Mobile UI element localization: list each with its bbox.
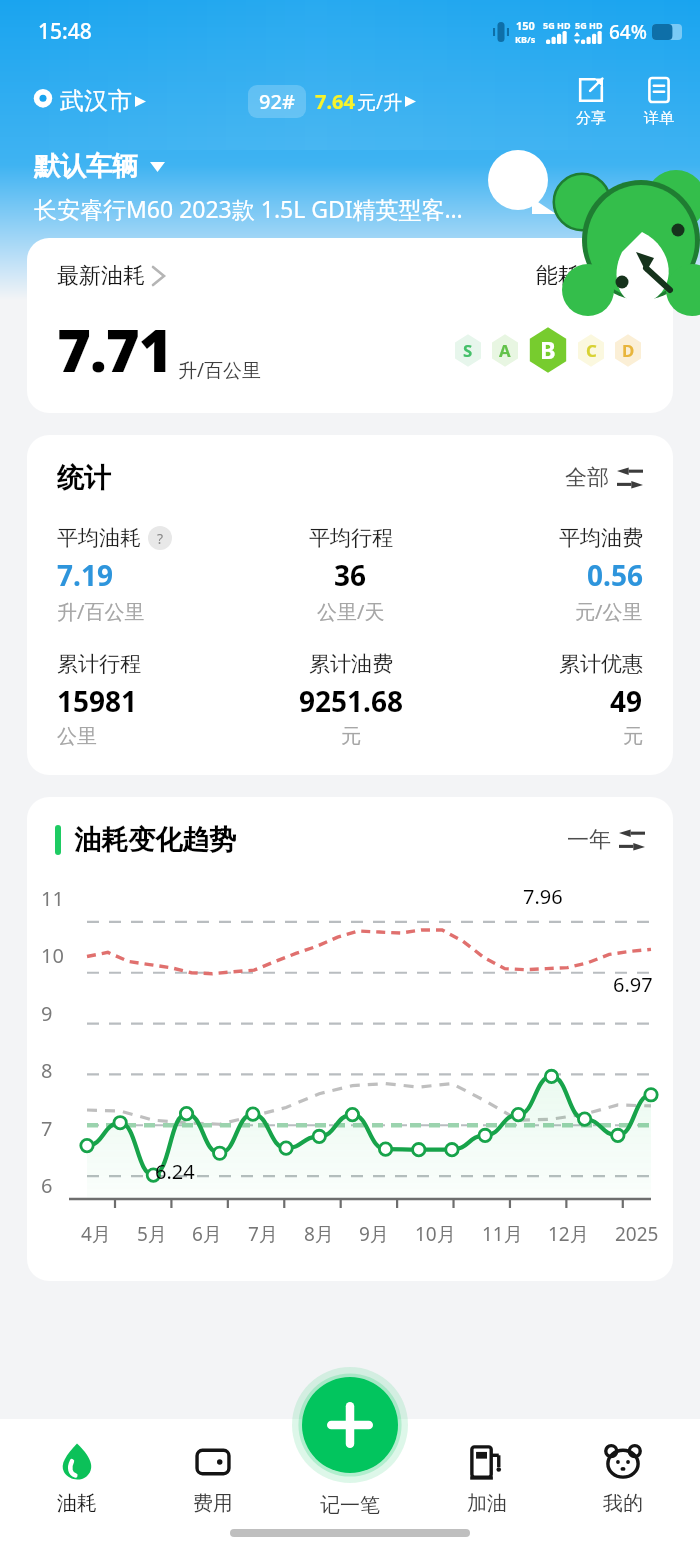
- button[interactable]: 平均油耗: [57, 525, 253, 625]
- button[interactable]: 记一笔: [302, 1377, 398, 1473]
- staticText: 记一笔: [320, 1493, 380, 1518]
- staticText: 元/公里: [575, 598, 643, 625]
- staticText: 10月: [415, 1221, 456, 1247]
- staticText: 统计: [57, 461, 111, 495]
- staticText: 15981: [57, 682, 138, 720]
- staticText: 元/升: [357, 89, 403, 115]
- staticText: 10: [41, 942, 64, 969]
- staticText: A: [499, 339, 511, 362]
- staticText: 6.97: [613, 971, 653, 998]
- staticText: 元: [623, 724, 643, 749]
- staticText: 150: [516, 18, 535, 33]
- other: 详单: [644, 75, 674, 105]
- staticText: 平均油耗: [57, 525, 141, 551]
- staticText: 能耗评级: [536, 262, 624, 290]
- button[interactable]: 平均行程: [253, 525, 448, 625]
- staticText: 92#: [259, 88, 295, 115]
- staticText: 7.96: [523, 883, 563, 910]
- button[interactable]: 油耗: [17, 1441, 137, 1516]
- staticText: 默认车辆: [34, 150, 138, 183]
- button[interactable]: 平均油费: [448, 525, 643, 625]
- staticText: 9251.68: [299, 682, 403, 720]
- staticText: 49: [610, 682, 643, 720]
- staticText: 费用: [193, 1491, 233, 1516]
- staticText: 9: [41, 1000, 53, 1027]
- button[interactable]: 费用: [153, 1441, 273, 1516]
- button[interactable]: 武汉市: [32, 86, 146, 116]
- staticText: 累计优惠: [559, 651, 643, 677]
- staticText: 升/百公里: [57, 598, 145, 625]
- staticText: 8月: [304, 1221, 334, 1247]
- staticText: KB/s: [515, 33, 536, 45]
- button[interactable]: 累计油费: [253, 651, 448, 749]
- staticText: 公里: [57, 724, 97, 749]
- staticText: 0.56: [587, 556, 643, 594]
- staticText: 累计油费: [309, 651, 393, 677]
- staticText: B: [540, 334, 556, 366]
- staticText: 累计行程: [57, 651, 141, 677]
- staticText: 一年: [567, 826, 611, 854]
- staticText: 5G: [543, 19, 555, 31]
- staticText: 公里/天: [317, 598, 385, 625]
- staticText: 7: [41, 1115, 53, 1142]
- button[interactable]: 最新油耗: [57, 262, 164, 290]
- button[interactable]: 详单: [640, 75, 678, 128]
- button[interactable]: 能耗评级: [536, 262, 643, 290]
- button[interactable]: 一年: [567, 826, 645, 854]
- staticText: 5G: [575, 19, 587, 31]
- staticText: D: [622, 339, 635, 362]
- staticText: 15:48: [38, 17, 92, 46]
- staticText: 长安睿行M60 2023款 1.5L GDI精英型客…: [34, 193, 463, 224]
- button[interactable]: 全部: [565, 464, 643, 492]
- staticText: 7月: [248, 1221, 278, 1247]
- staticText: 油耗: [57, 1491, 97, 1516]
- staticText: 6月: [192, 1221, 222, 1247]
- staticText: 6: [41, 1172, 53, 1199]
- staticText: 元: [341, 724, 361, 749]
- button[interactable]: 累计优惠: [448, 651, 643, 749]
- button[interactable]: 默认车辆: [34, 150, 165, 183]
- staticText: 6.24: [155, 1158, 195, 1185]
- staticText: 平均油费: [559, 525, 643, 551]
- staticText: 全部: [565, 464, 609, 492]
- staticText: ?: [157, 529, 164, 548]
- staticText: 详单: [644, 109, 674, 128]
- button[interactable]: 累计行程: [57, 651, 253, 749]
- staticText: 分享: [576, 109, 606, 128]
- staticText: 7.64: [315, 88, 355, 115]
- staticText: 36: [334, 556, 367, 594]
- staticText: 64%: [609, 19, 647, 45]
- staticText: 加油: [467, 1491, 507, 1516]
- staticText: HD: [589, 19, 603, 31]
- staticText: 9月: [359, 1221, 389, 1247]
- button[interactable]: 我的: [563, 1441, 683, 1516]
- staticText: 7.71: [57, 310, 172, 389]
- staticText: 油耗变化趋势: [74, 823, 236, 857]
- staticText: S: [463, 339, 473, 362]
- staticText: 8: [41, 1057, 53, 1084]
- button[interactable]: 92#: [248, 85, 416, 118]
- staticText: 2025: [615, 1221, 659, 1247]
- staticText: 武汉市: [60, 86, 132, 116]
- staticText: 我的: [603, 1491, 643, 1516]
- staticText: C: [586, 339, 597, 362]
- staticText: 11月: [482, 1221, 523, 1247]
- staticText: 最新油耗: [57, 262, 145, 290]
- staticText: 12月: [548, 1221, 589, 1247]
- staticText: 11: [41, 885, 64, 912]
- staticText: 4月: [81, 1221, 111, 1247]
- staticText: HD: [557, 19, 571, 31]
- staticText: 7.19: [57, 556, 113, 594]
- button[interactable]: 记一笔: [320, 1441, 380, 1518]
- staticText: 升/百公里: [178, 357, 262, 383]
- button[interactable]: 加油: [427, 1441, 547, 1516]
- staticText: 平均行程: [309, 525, 393, 551]
- staticText: 5月: [137, 1221, 167, 1247]
- button[interactable]: 分享: [572, 75, 610, 128]
- other: 分享: [576, 75, 606, 105]
